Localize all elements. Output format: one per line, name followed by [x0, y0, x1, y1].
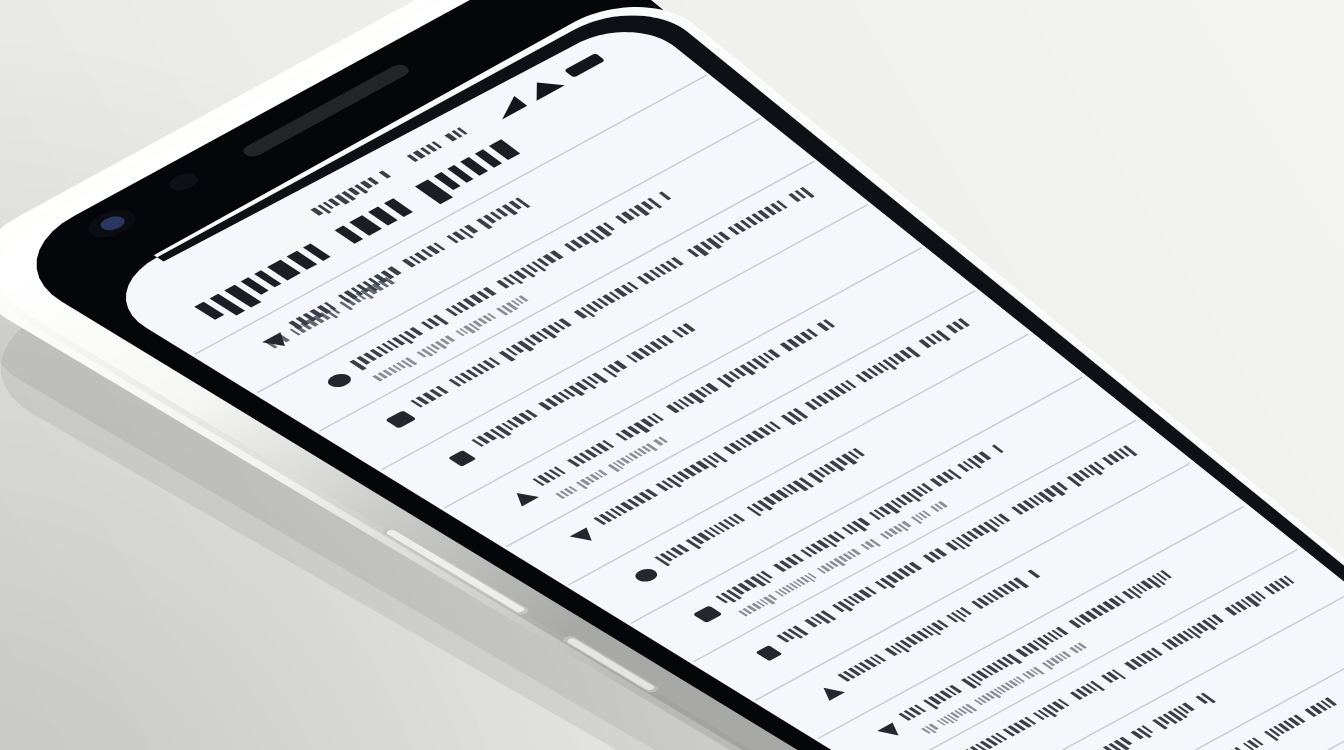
button[interactable]: Phone showing a settings list — [0, 0, 1344, 750]
